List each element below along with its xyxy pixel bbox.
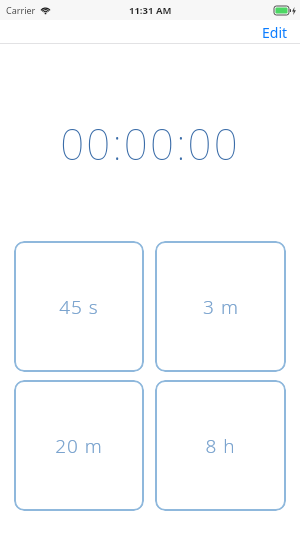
- button[interactable]: Edit: [262, 23, 288, 42]
- staticText: 00:00:00: [60, 115, 240, 172]
- button[interactable]: 8 h: [155, 380, 286, 511]
- button[interactable]: 45 s: [14, 241, 144, 372]
- staticText: Carrier: [6, 4, 36, 16]
- staticText: 3 m: [203, 294, 239, 320]
- staticText: 11:31 AM: [129, 4, 172, 17]
- button[interactable]: 3 m: [155, 241, 286, 372]
- staticText: 45 s: [59, 294, 99, 320]
- staticText: 8 h: [205, 433, 236, 459]
- staticText: 20 m: [55, 433, 103, 459]
- button[interactable]: 20 m: [14, 380, 144, 511]
- staticText: Edit: [262, 23, 288, 42]
